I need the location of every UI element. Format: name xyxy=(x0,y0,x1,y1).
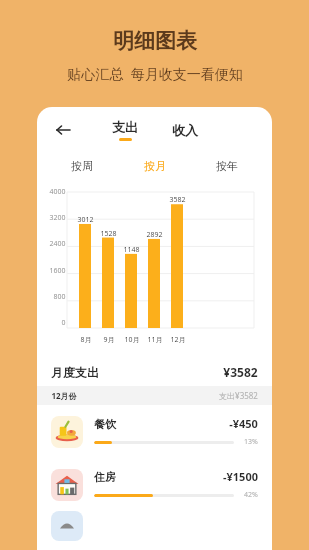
staticText: 月度支出 xyxy=(51,365,99,380)
staticText: 42% xyxy=(244,490,258,500)
staticText: 按周 xyxy=(71,159,93,173)
staticText: 明细图表 xyxy=(113,28,197,54)
button[interactable]: 按年 xyxy=(208,155,246,177)
staticText: -¥450 xyxy=(229,416,258,431)
staticText: 1600 xyxy=(49,266,66,276)
staticText: 支出¥3582 xyxy=(219,390,258,401)
staticText: 0 xyxy=(61,318,66,328)
staticText: 800 xyxy=(53,292,66,302)
staticText: 10月 xyxy=(124,335,140,345)
staticText: 收入 xyxy=(172,122,198,138)
staticText: 贴心汇总 每月收支一看便知 xyxy=(67,64,243,83)
button[interactable]: 按周 xyxy=(63,155,101,177)
staticText: 2892 xyxy=(146,230,163,240)
staticText: ¥3582 xyxy=(223,364,258,380)
staticText: 13% xyxy=(244,437,258,447)
button[interactable]: 支出 xyxy=(108,119,142,141)
staticText: 按月 xyxy=(144,159,166,173)
button[interactable]: 返回 xyxy=(49,116,77,144)
button[interactable]: 按月 xyxy=(136,155,174,177)
staticText: 12月 xyxy=(170,335,186,345)
staticText: 1148 xyxy=(123,245,140,255)
button[interactable]: 住房 xyxy=(37,458,272,511)
staticText: 1528 xyxy=(100,229,117,239)
button[interactable] xyxy=(37,511,272,541)
staticText: 4000 xyxy=(49,187,66,197)
staticText: -¥1500 xyxy=(223,469,258,484)
staticText: 3012 xyxy=(77,215,94,225)
staticText: 2400 xyxy=(49,239,66,249)
button[interactable]: 餐饮 xyxy=(37,405,272,458)
staticText: 3200 xyxy=(49,213,66,223)
staticText: 9月 xyxy=(103,335,115,345)
staticText: 餐饮 xyxy=(94,417,116,431)
staticText: 11月 xyxy=(147,335,163,345)
staticText: 3582 xyxy=(169,195,186,205)
button[interactable]: 收入 xyxy=(168,120,202,140)
staticText: 住房 xyxy=(94,470,116,484)
staticText: 按年 xyxy=(216,159,238,173)
staticText: 8月 xyxy=(80,335,92,345)
staticText: 支出 xyxy=(112,119,138,135)
staticText: 12月份 xyxy=(51,390,77,401)
